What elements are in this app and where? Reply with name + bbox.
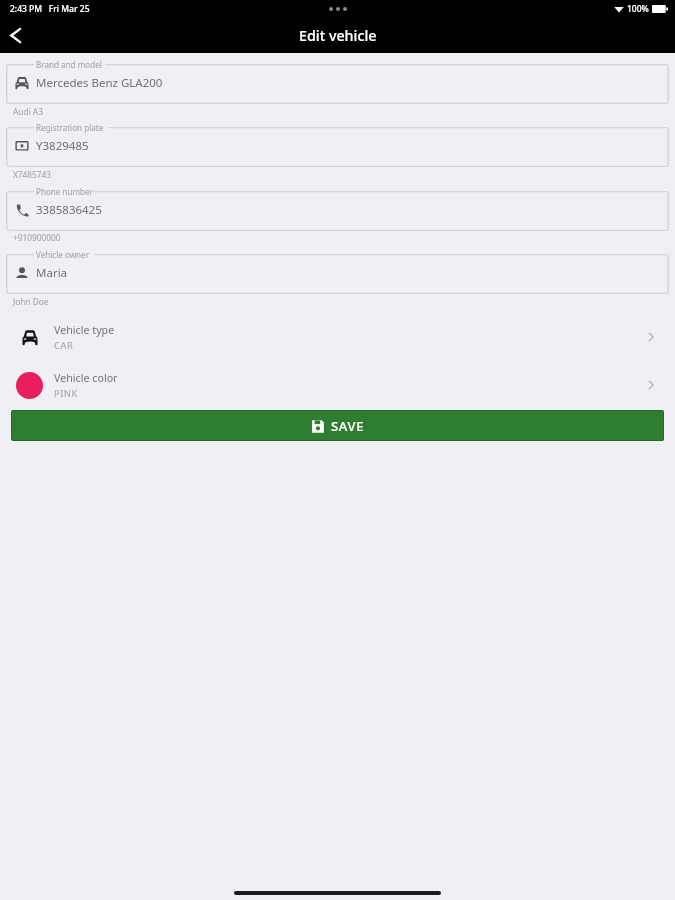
staticText: Maria (36, 265, 68, 281)
staticText: 100% (627, 3, 649, 15)
button[interactable]: 3385836425 (6, 191, 669, 231)
staticText: Vehicle owner (36, 249, 89, 260)
staticText: Mercedes Benz GLA200 (36, 75, 163, 91)
staticText: Brand and model (36, 59, 102, 70)
staticText: X7485743 (13, 169, 52, 180)
staticText: +910900000 (13, 232, 61, 243)
button[interactable]: SAVE (12, 411, 663, 440)
button[interactable]: Back (0, 20, 31, 51)
staticText: John Doe (13, 296, 49, 307)
button[interactable]: Vehicle color (0, 362, 675, 408)
staticText: Y3829485 (36, 138, 89, 154)
staticText: SAVE (331, 417, 365, 435)
staticText: 3385836425 (36, 202, 102, 218)
staticText: CAR (54, 339, 74, 352)
staticText: PINK (54, 387, 78, 400)
staticText: Phone number (36, 186, 93, 197)
button[interactable]: Vehicle type (0, 314, 675, 360)
staticText: Edit vehicle (299, 26, 377, 45)
staticText: Vehicle color (54, 371, 118, 386)
staticText: Vehicle type (54, 323, 115, 338)
button[interactable]: Y3829485 (6, 127, 669, 167)
staticText: Audi A3 (13, 106, 43, 117)
staticText: 2:43 PM Fri Mar 25 (10, 3, 90, 15)
staticText: Registration plate (36, 122, 104, 133)
button[interactable]: Maria (6, 254, 669, 294)
button[interactable]: Mercedes Benz GLA200 (6, 64, 669, 104)
